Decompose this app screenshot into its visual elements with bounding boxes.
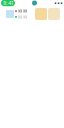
staticText: xx xx [18,14,27,19]
staticText: 9:41 [3,0,13,6]
staticText: xx xx [18,9,27,13]
staticText: ••• [54,0,63,6]
